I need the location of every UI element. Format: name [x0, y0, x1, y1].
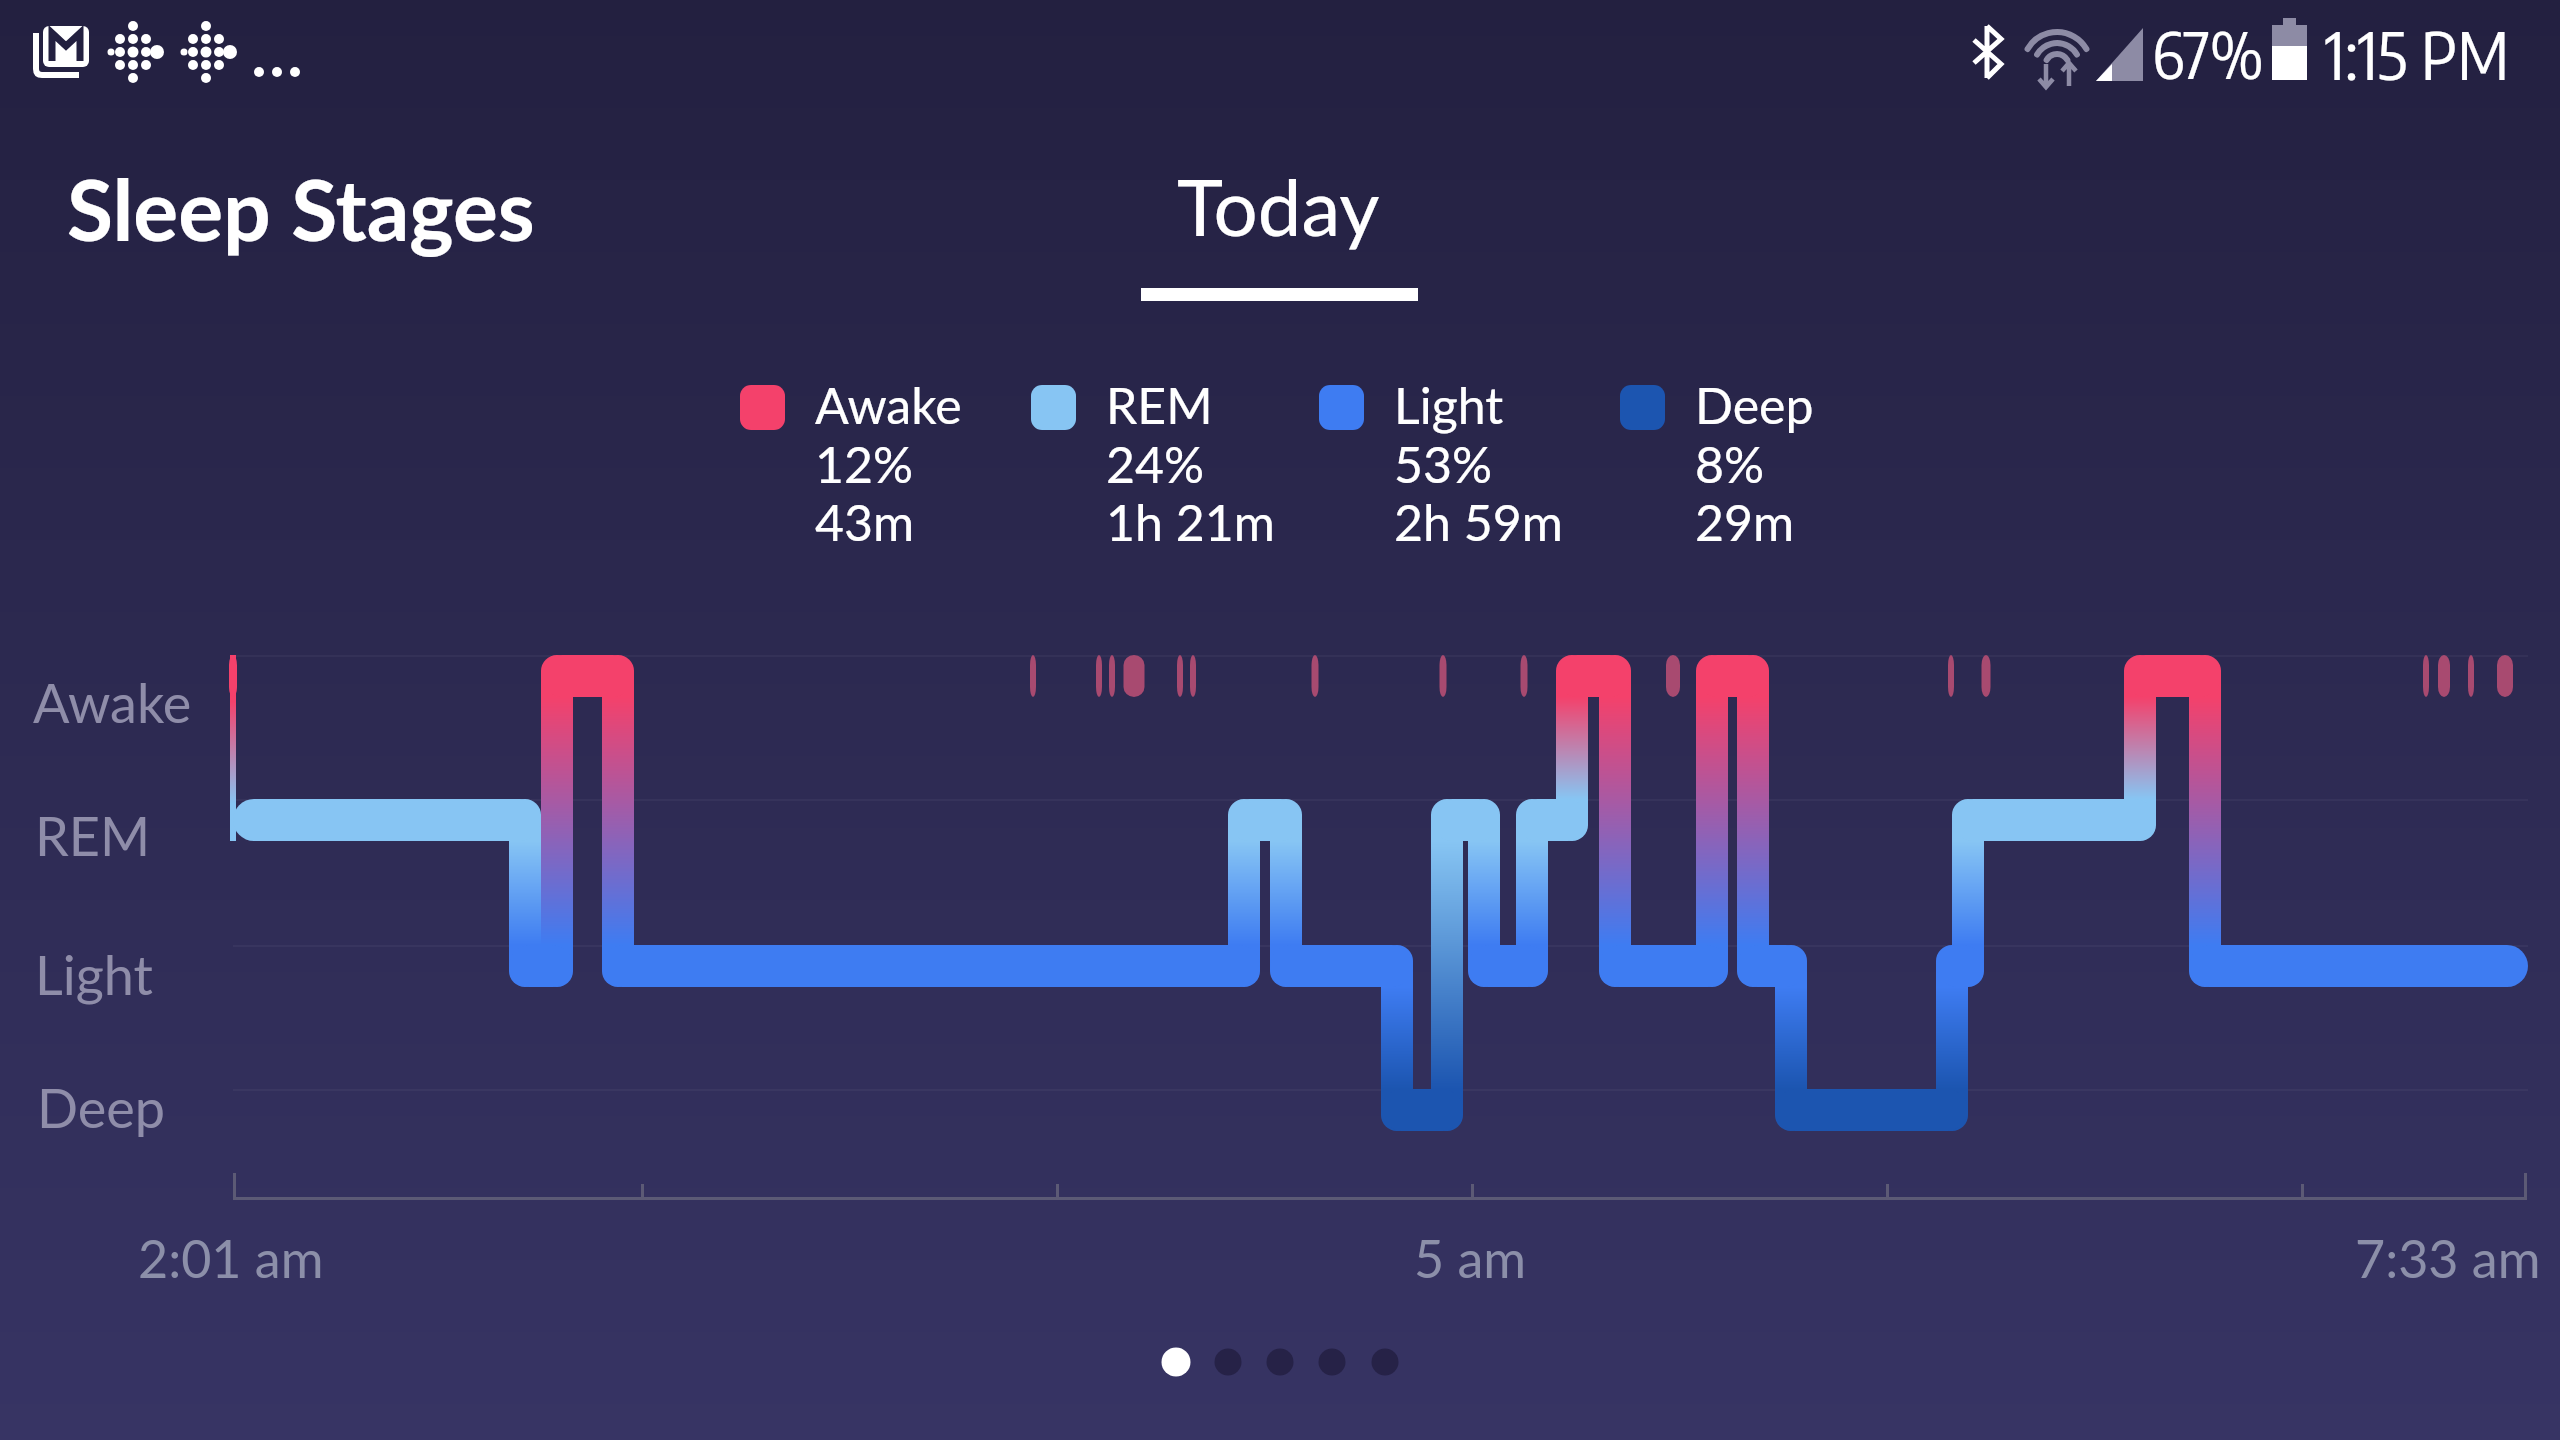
- staticText: Light: [1394, 375, 1504, 435]
- staticText: Deep: [1695, 375, 1814, 435]
- button[interactable]: Awake: [740, 375, 990, 555]
- staticText: 67%: [2152, 13, 2264, 93]
- button[interactable]: REM: [1031, 375, 1281, 555]
- staticText: Light: [35, 942, 153, 1007]
- staticText: 1:15 PM: [2325, 12, 2510, 94]
- button[interactable]: Sleep Stages: [60, 150, 540, 270]
- button[interactable]: Light: [1319, 375, 1569, 555]
- staticText: 8%: [1695, 434, 1765, 494]
- staticText: 1h 21m: [1106, 492, 1275, 552]
- staticText: 29m: [1695, 492, 1795, 552]
- button[interactable]: Deep: [1620, 375, 1870, 555]
- staticText: 24%: [1106, 434, 1205, 494]
- staticText: 5 am: [1414, 1227, 1527, 1289]
- staticText: 2h 59m: [1394, 492, 1563, 552]
- staticText: 12%: [815, 434, 914, 494]
- staticText: 2:01 am: [138, 1227, 324, 1289]
- staticText: Awake: [815, 375, 962, 435]
- staticText: 7:33 am: [2355, 1227, 2541, 1289]
- staticText: REM: [1106, 375, 1213, 435]
- staticText: 43m: [815, 492, 915, 552]
- button[interactable]: Today: [1135, 150, 1425, 310]
- staticText: 53%: [1394, 434, 1493, 494]
- staticText: Today: [1177, 159, 1380, 253]
- staticText: Awake: [33, 670, 192, 735]
- staticText: Sleep Stages: [67, 158, 535, 259]
- staticText: REM: [35, 803, 151, 868]
- staticText: Deep: [37, 1075, 165, 1140]
